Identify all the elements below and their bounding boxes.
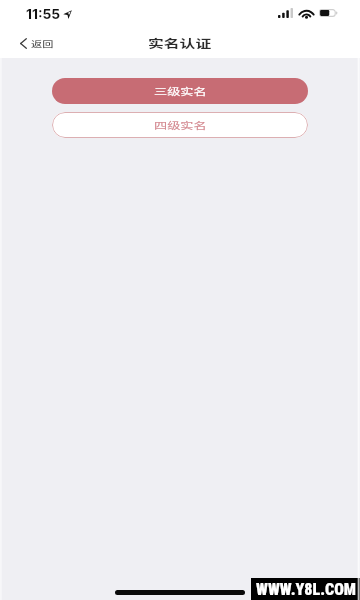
button[interactable]: 四级实名: [52, 112, 308, 138]
button[interactable]: 三级实名: [52, 78, 308, 104]
button[interactable]: 返回: [20, 35, 54, 51]
staticText: 四级实名: [154, 119, 207, 132]
staticText: 三级实名: [154, 85, 207, 98]
staticText: 实名认证: [148, 35, 212, 52]
staticText: WWW.Y8L.COM: [256, 580, 356, 599]
staticText: 11:55: [26, 6, 61, 23]
staticText: 返回: [31, 37, 54, 49]
